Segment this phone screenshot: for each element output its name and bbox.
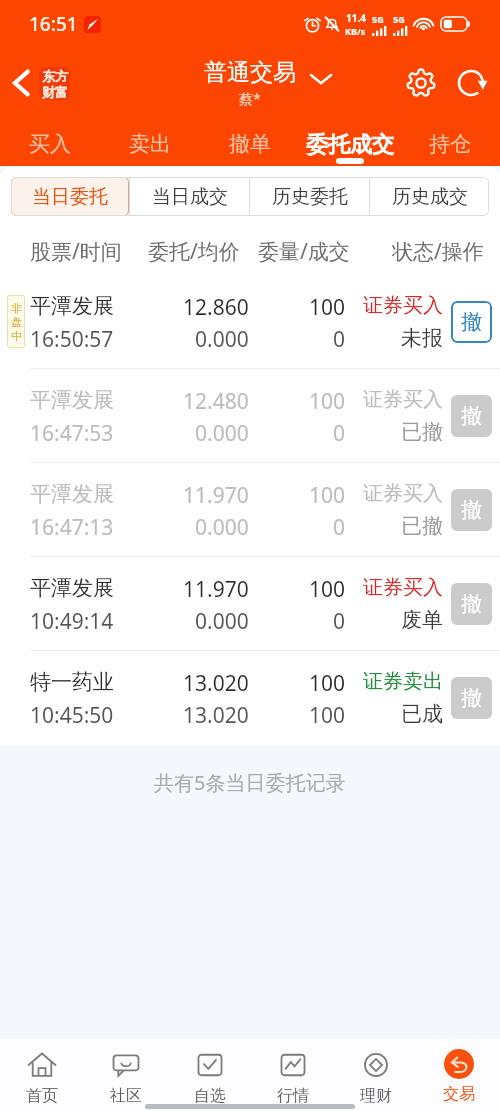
staticText: 撤 [461,591,482,617]
button[interactable]: 撤 [451,489,492,531]
staticText: 13.020 [183,669,249,698]
button[interactable]: 撤 [451,395,492,437]
staticText: 撤 [461,497,482,523]
staticText: 0.000 [195,607,249,636]
staticText: 卖出 [129,131,171,157]
staticText: 社区 [110,1086,142,1106]
staticText: 委托成交 [306,131,394,159]
staticText: 13.020 [183,701,249,730]
staticText: 0 [333,513,346,542]
staticText: 100 [309,701,346,730]
staticText: 0.000 [195,513,249,542]
button[interactable]: 持仓 [400,118,500,166]
staticText: 已撤 [401,513,443,539]
staticText: 平潭发展 [30,387,114,413]
staticText: 盘 [11,315,22,329]
button[interactable]: Settings [400,62,442,104]
button[interactable]: 自选 [168,1049,251,1111]
staticText: 委量/成交 [258,237,350,266]
button[interactable]: 平潭发展 [0,369,500,463]
staticText: 自选 [194,1086,226,1106]
button[interactable]: Refresh [450,62,492,104]
button[interactable]: 撤单 [200,118,300,166]
staticText: 历史委托 [272,185,348,209]
staticText: 废单 [401,607,443,633]
staticText: 0 [333,419,346,448]
staticText: 12.860 [183,293,249,322]
staticText: 已成 [401,701,443,727]
button[interactable]: 非 [0,275,500,369]
staticText: 撤 [461,685,482,711]
staticText: 5G [393,13,405,25]
staticText: 10:45:50 [30,701,114,730]
staticText: 特一药业 [30,669,114,695]
staticText: 共有5条当日委托记录 [154,769,346,796]
staticText: 当日成交 [152,185,228,209]
staticText: 16:50:57 [30,325,114,354]
button[interactable]: 历史成交 [370,177,489,216]
staticText: 未报 [401,325,443,351]
staticText: 16:47:13 [30,513,114,542]
staticText: 历史成交 [392,185,468,209]
button[interactable]: 当日委托 [11,177,129,216]
staticText: 财富 [42,84,68,100]
staticText: 当日委托 [32,185,108,209]
staticText: 蔡* [239,89,261,108]
staticText: 非 [11,301,22,315]
staticText: 100 [309,481,346,510]
staticText: 行情 [277,1086,309,1106]
staticText: 5G [372,13,384,25]
staticText: 0 [333,607,346,636]
button[interactable]: 撤 [451,677,492,719]
button[interactable]: 特一药业 [0,651,500,745]
button[interactable]: 社区 [84,1049,168,1111]
staticText: 买入 [29,131,71,157]
button[interactable]: 平潭发展 [0,463,500,557]
button[interactable]: 当日成交 [130,177,249,216]
staticText: 持仓 [429,131,471,157]
staticText: 证券卖出 [363,669,443,694]
button[interactable]: 撤 [451,301,492,343]
button[interactable]: 理财 [334,1049,417,1111]
staticText: 理财 [360,1086,392,1106]
staticText: 12.480 [183,387,249,416]
staticText: 证券买入 [363,387,443,412]
staticText: 10:49:14 [30,607,114,636]
staticText: 状态/操作 [392,237,484,266]
staticText: 11.970 [183,575,249,604]
staticText: 东方 [42,68,68,84]
staticText: 16:47:53 [30,419,114,448]
button[interactable]: 委托成交 [300,118,400,166]
staticText: 100 [309,575,346,604]
staticText: 交易 [443,1084,475,1104]
staticText: 16:51 [29,11,78,37]
staticText: 0.000 [195,325,249,354]
button[interactable]: Back [1,63,41,103]
staticText: 平潭发展 [30,293,114,319]
staticText: 100 [309,293,346,322]
button[interactable]: 平潭发展 [0,557,500,651]
button[interactable]: 行情 [251,1049,334,1111]
staticText: 平潭发展 [30,481,114,507]
staticText: 首页 [26,1086,58,1106]
button[interactable]: 卖出 [100,118,200,166]
staticText: 0.000 [195,419,249,448]
button[interactable]: 历史委托 [250,177,369,216]
staticText: 中 [11,329,22,343]
button[interactable]: 撤 [451,583,492,625]
staticText: 100 [309,669,346,698]
staticText: 已撤 [401,419,443,445]
button[interactable]: 交易 [417,1049,500,1111]
staticText: 证券买入 [363,293,443,318]
staticText: 撤 [461,309,482,335]
staticText: 撤 [461,403,482,429]
staticText: 普通交易 [204,58,296,87]
staticText: 证券买入 [363,481,443,506]
staticText: 委托/均价 [148,237,240,266]
button[interactable]: 普通交易 [204,58,296,108]
staticText: 0 [333,325,346,354]
button[interactable]: 首页 [0,1049,84,1111]
button[interactable]: 买入 [0,118,100,166]
staticText: 股票/时间 [30,237,122,266]
staticText: 11.4 [346,11,366,25]
